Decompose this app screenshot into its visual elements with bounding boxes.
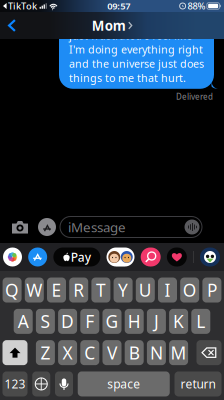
button[interactable]: O bbox=[180, 278, 199, 303]
staticText: J bbox=[154, 310, 159, 333]
button[interactable]: W bbox=[25, 278, 44, 303]
button[interactable] bbox=[196, 340, 221, 365]
button[interactable]: X bbox=[58, 340, 77, 365]
button[interactable]: 123 bbox=[2, 371, 27, 396]
button[interactable]: T bbox=[91, 278, 110, 303]
staticText: space bbox=[107, 376, 140, 392]
staticText: K bbox=[173, 310, 184, 333]
button[interactable]: space bbox=[78, 371, 170, 396]
staticText: X bbox=[63, 341, 73, 364]
staticText: class by 30 minutes..I'm just frustrated… bbox=[69, 14, 204, 85]
staticText: G bbox=[105, 310, 118, 333]
button[interactable]: Y bbox=[114, 278, 133, 303]
button[interactable] bbox=[55, 371, 73, 396]
button[interactable]: iMessage app bbox=[200, 247, 220, 266]
button[interactable]: B bbox=[125, 340, 144, 365]
staticText: I bbox=[164, 278, 170, 301]
button[interactable]: Mom bbox=[92, 12, 132, 39]
staticText: return bbox=[180, 376, 215, 392]
button[interactable]: Record audio bbox=[184, 219, 199, 234]
staticText: Y bbox=[118, 278, 128, 301]
staticText: P bbox=[207, 278, 217, 301]
button[interactable]: E bbox=[47, 278, 66, 303]
button[interactable]: D bbox=[58, 309, 77, 334]
button[interactable] bbox=[2, 340, 27, 365]
button[interactable]: L bbox=[191, 309, 210, 334]
staticText: 09:57 bbox=[107, 0, 130, 12]
button[interactable]: P bbox=[202, 278, 221, 303]
staticText: B bbox=[129, 341, 140, 364]
button[interactable]: M bbox=[169, 340, 188, 365]
button[interactable]: K bbox=[169, 309, 188, 334]
button[interactable] bbox=[32, 371, 50, 396]
button[interactable]: N bbox=[147, 340, 166, 365]
staticText: H bbox=[128, 310, 141, 333]
staticText: F bbox=[85, 310, 94, 333]
button[interactable]: V bbox=[102, 340, 121, 365]
button[interactable]: iMessage app bbox=[167, 247, 187, 266]
staticText: D bbox=[61, 310, 74, 333]
button[interactable]: return bbox=[174, 371, 221, 396]
button[interactable]: iMessage app bbox=[141, 247, 161, 266]
staticText: U bbox=[139, 278, 152, 301]
staticText: A bbox=[18, 310, 29, 333]
staticText: V bbox=[107, 341, 117, 364]
button[interactable]: Back bbox=[0, 12, 24, 39]
staticText: Pay bbox=[71, 249, 91, 265]
staticText: R bbox=[73, 278, 84, 301]
button[interactable]: H bbox=[125, 309, 144, 334]
staticText: E bbox=[51, 278, 61, 301]
button[interactable]: Q bbox=[3, 278, 22, 303]
staticText: M bbox=[171, 341, 187, 364]
staticText: N bbox=[150, 341, 163, 364]
staticText: O bbox=[183, 278, 197, 301]
staticText: T bbox=[96, 278, 106, 301]
button[interactable]: U bbox=[136, 278, 155, 303]
staticText: W bbox=[26, 278, 42, 301]
staticText: 88% bbox=[187, 0, 205, 12]
button[interactable]: J bbox=[147, 309, 166, 334]
staticText: Z bbox=[40, 341, 50, 364]
button[interactable]: G bbox=[102, 309, 121, 334]
button[interactable]: R bbox=[69, 278, 88, 303]
staticText: Mom bbox=[92, 17, 126, 34]
staticText: L bbox=[196, 310, 205, 333]
button[interactable]: I bbox=[158, 278, 177, 303]
button[interactable]: Apps bbox=[34, 216, 60, 238]
button[interactable]: iMessage app bbox=[53, 247, 100, 266]
button[interactable]: iMessage app bbox=[3, 247, 22, 266]
button[interactable]: iMessage app bbox=[106, 247, 134, 266]
staticText: iMessage bbox=[68, 218, 126, 236]
button[interactable]: Z bbox=[36, 340, 55, 365]
button[interactable]: S bbox=[36, 309, 55, 334]
staticText: 123 bbox=[4, 376, 25, 392]
staticText: S bbox=[40, 310, 50, 333]
button[interactable]: A bbox=[14, 309, 33, 334]
staticText: TikTok bbox=[8, 0, 37, 12]
button[interactable]: F bbox=[80, 309, 99, 334]
button[interactable]: C bbox=[80, 340, 99, 365]
button[interactable]: iMessage app bbox=[28, 247, 47, 266]
button[interactable]: Camera bbox=[6, 216, 34, 238]
staticText: C bbox=[84, 341, 95, 364]
staticText: Delivered bbox=[176, 91, 213, 102]
staticText: Q bbox=[5, 278, 19, 301]
